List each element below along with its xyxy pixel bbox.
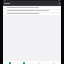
button[interactable]: Library [17, 61, 31, 64]
button[interactable]: Profile [46, 61, 61, 64]
button[interactable] [4, 10, 60, 12]
button[interactable]: Search [31, 61, 46, 64]
button[interactable]: Home [3, 61, 17, 64]
button[interactable]: More options [3, 1, 61, 5]
button[interactable] [4, 7, 60, 9]
button[interactable] [4, 13, 60, 15]
